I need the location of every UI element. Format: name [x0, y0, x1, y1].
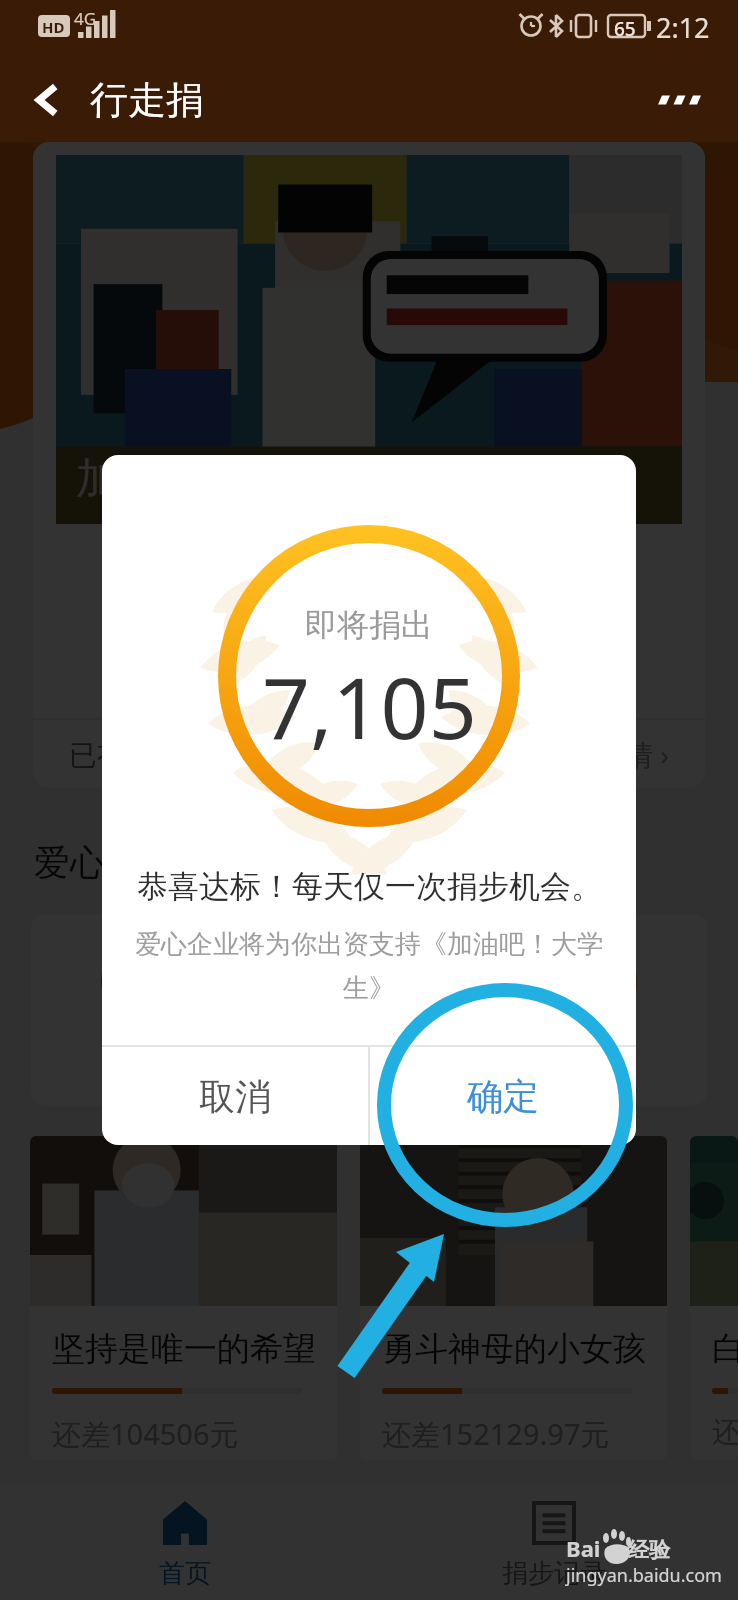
staticText: 捐赠	[417, 1036, 473, 1071]
button[interactable]: 确定	[370, 1047, 636, 1145]
staticText: 即将捐出	[305, 605, 433, 645]
button[interactable]: 首页	[0, 1483, 369, 1600]
staticText: 累计捐步	[332, 674, 428, 704]
button[interactable]: 捐步记录	[369, 1483, 738, 1600]
staticText: jingyan.baidu.com	[566, 1563, 722, 1588]
staticText: 爱心企业将为你出资支持《加油吧！大学生》	[124, 928, 614, 1005]
staticText: 4G	[74, 7, 97, 30]
button[interactable]: Back	[20, 72, 76, 128]
button[interactable]: 取消	[102, 1047, 368, 1145]
staticText: 坚持是唯一的希望	[52, 1328, 316, 1370]
staticText: 月捐	[112, 1036, 168, 1071]
staticText: 爱心榜单	[34, 840, 178, 885]
staticText: HD	[42, 17, 65, 37]
button[interactable]: 加油吧！大学生	[33, 142, 705, 788]
staticText: 已有 1024 人参与捐步	[69, 735, 344, 773]
staticText: 2:12	[656, 9, 710, 46]
staticText: 经验	[628, 1537, 670, 1563]
button[interactable]: 勇斗神母的小女孩	[360, 1136, 667, 1460]
staticText: 行走捐	[90, 76, 204, 124]
staticText: 还差152129.97元	[382, 1414, 610, 1454]
button[interactable]: 救助	[555, 938, 641, 1075]
staticText: Bai	[566, 1533, 601, 1563]
button[interactable]: 捐步	[250, 938, 336, 1075]
button[interactable]: 白血病男孩加油	[690, 1136, 738, 1460]
button[interactable]: 月捐	[97, 938, 183, 1075]
staticText: 78,400	[336, 632, 424, 670]
button[interactable]: 坚持是唯一的希望	[30, 1136, 337, 1460]
staticText: 取消	[199, 1074, 271, 1119]
staticText: 今日步数	[135, 674, 231, 704]
button[interactable]: 捐赠	[402, 938, 488, 1075]
staticText: 首页	[159, 1557, 211, 1590]
staticText: 7,105	[147, 632, 219, 670]
staticText: 勇斗神母的小女孩	[382, 1328, 646, 1370]
button[interactable]: More options	[648, 68, 712, 132]
staticText: 捐步记录	[502, 1557, 606, 1590]
staticText: 加油吧！大学生	[76, 453, 370, 506]
staticText: 还差104506元	[52, 1414, 239, 1454]
staticText: 救助	[570, 1036, 626, 1071]
staticText: 捐步	[265, 1036, 321, 1071]
staticText: 确定	[467, 1074, 539, 1119]
staticText: 还差92340元	[712, 1414, 738, 1451]
staticText: 7,105	[262, 649, 477, 763]
staticText: 查看详情 ›	[541, 735, 669, 773]
staticText: 65	[614, 16, 636, 42]
staticText: 恭喜达标！每天仅一次捐步机会。	[137, 867, 602, 906]
staticText: 白血病男孩加油	[712, 1328, 738, 1370]
